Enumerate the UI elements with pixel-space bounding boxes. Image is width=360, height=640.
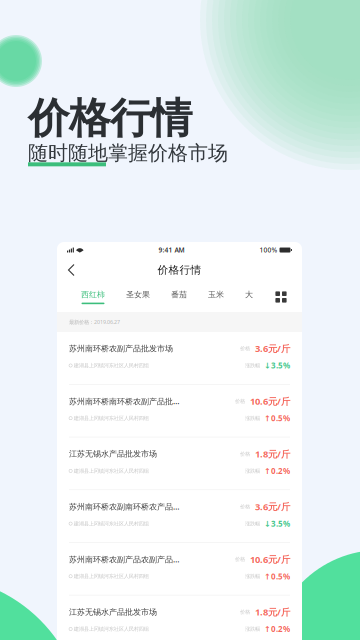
staticText: ↑0.2% <box>264 466 290 476</box>
staticText: ↑0.5% <box>264 413 290 423</box>
staticText: 涨跌幅 <box>245 362 260 369</box>
staticText: ↓3.5% <box>264 360 290 371</box>
staticText: 1.8元/斤 <box>255 448 290 460</box>
staticText: 建湖县上冈镇河东社区人民村四组 <box>74 415 149 421</box>
staticText: ↑0.2% <box>264 624 290 634</box>
staticText: 涨跌幅 <box>245 415 260 421</box>
staticText: 价格 <box>240 345 250 352</box>
staticText: 建湖县上冈镇河东社区人民村四组 <box>74 520 149 527</box>
button[interactable]: 江苏无锡水产品批发市场 <box>57 595 302 640</box>
button[interactable]: 返回 <box>62 259 82 281</box>
button[interactable]: 全部分类 <box>274 290 288 304</box>
staticText: 10.6元/斤 <box>250 553 290 565</box>
staticText: 江苏无锡水产品批发市场 <box>69 607 157 617</box>
staticText: 1.8元/斤 <box>255 606 290 618</box>
staticText: 苏州南环桥南环桥农副产品批… <box>69 396 179 406</box>
staticText: 涨跌幅 <box>245 520 260 527</box>
staticText: 建湖县上冈镇河东社区人民村四组 <box>74 362 149 369</box>
staticText: 100% <box>259 246 277 254</box>
staticText: ↑0.5% <box>264 571 290 582</box>
staticText: 圣女果 <box>126 290 150 300</box>
staticText: 价格行情 <box>28 93 192 144</box>
staticText: 价格 <box>240 609 250 615</box>
button[interactable]: 苏州南环桥农副产品批发市场 <box>57 332 302 384</box>
button[interactable]: 玉米 <box>208 287 224 307</box>
staticText: 苏州南环桥农副南环桥农产品… <box>69 501 179 512</box>
button[interactable]: 番茄 <box>171 287 187 307</box>
button[interactable]: 江苏无锡水产品批发市场 <box>57 437 302 489</box>
staticText: 大 <box>245 290 253 300</box>
button[interactable]: 西红柿 <box>81 290 105 304</box>
staticText: 苏州南环桥农副产品批发市场 <box>69 344 173 353</box>
staticText: 江苏无锡水产品批发市场 <box>69 449 157 459</box>
staticText: 最新价格：2019.06.27 <box>69 318 120 326</box>
button[interactable]: 圣女果 <box>126 287 150 307</box>
staticText: 玉米 <box>208 290 224 300</box>
staticText: 番茄 <box>171 290 187 300</box>
staticText: 西红柿 <box>81 290 105 300</box>
staticText: 涨跌幅 <box>245 573 260 580</box>
staticText: 苏州南环桥农副产品农副产品… <box>69 554 179 565</box>
staticText: 建湖县上冈镇河东社区人民村四组 <box>74 468 149 474</box>
staticText: 价格行情 <box>157 263 201 276</box>
staticText: 10.6元/斤 <box>250 395 290 407</box>
staticText: 随时随地掌握价格市场 <box>28 141 228 165</box>
button[interactable]: 苏州南环桥农副产品农副产品… <box>57 543 302 595</box>
staticText: 价格 <box>235 556 245 563</box>
staticText: 3.6元/斤 <box>255 342 290 355</box>
button[interactable]: 大 <box>245 287 253 307</box>
button[interactable]: 苏州南环桥南环桥农副产品批… <box>57 385 302 437</box>
staticText: 价格 <box>240 451 250 457</box>
staticText: 涨跌幅 <box>245 626 260 632</box>
button[interactable]: 苏州南环桥农副南环桥农产品… <box>57 490 302 542</box>
staticText: 价格 <box>240 503 250 510</box>
staticText: 建湖县上冈镇河东社区人民村四组 <box>74 573 149 580</box>
staticText: ↓3.5% <box>264 518 290 529</box>
staticText: 建湖县上冈镇河东社区人民村四组 <box>74 626 149 632</box>
staticText: 3.6元/斤 <box>255 500 290 513</box>
staticText: 价格 <box>235 398 245 404</box>
staticText: 9:41 AM <box>158 246 184 254</box>
staticText: 涨跌幅 <box>245 468 260 474</box>
